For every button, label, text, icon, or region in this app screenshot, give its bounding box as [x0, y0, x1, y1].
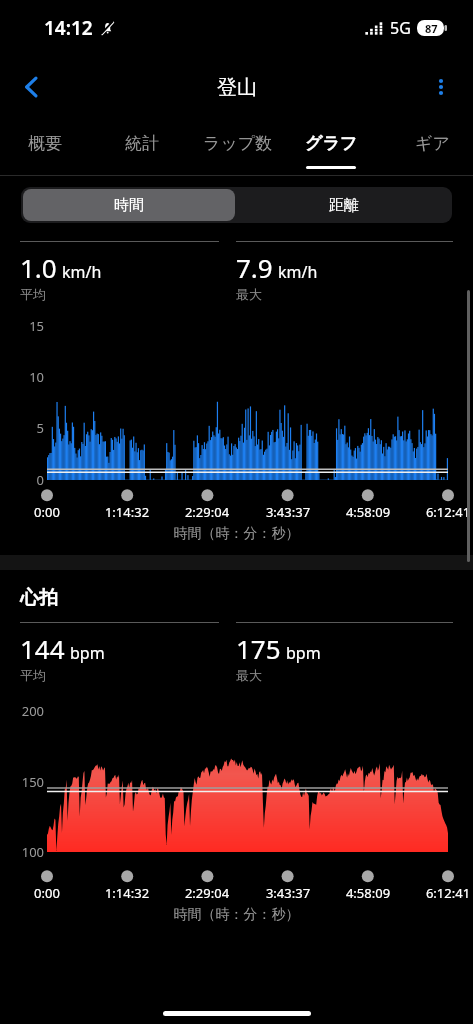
staticText: 統計 — [125, 133, 159, 154]
staticText: 2:29:04 — [177, 503, 237, 521]
button[interactable]: Back — [8, 63, 56, 111]
staticText: 15 — [20, 317, 44, 335]
staticText: 時間（時：分：秒） — [0, 525, 473, 543]
staticText: 平均 — [20, 286, 46, 302]
button[interactable]: 距離 — [236, 187, 452, 223]
staticText: 100 — [12, 843, 44, 861]
staticText: 4:58:09 — [338, 503, 398, 521]
staticText: 150 — [12, 773, 44, 791]
staticText: 2:29:04 — [177, 884, 237, 902]
button[interactable]: 概要 — [18, 118, 72, 168]
staticText: 時間 — [114, 196, 144, 215]
staticText: 概要 — [28, 133, 62, 154]
staticText: 距離 — [329, 196, 359, 215]
staticText: ラップ数 — [203, 133, 273, 154]
staticText: グラフ — [305, 133, 358, 154]
staticText: 平均 — [20, 667, 46, 683]
staticText: km/h — [62, 261, 102, 283]
staticText: 5G — [390, 17, 411, 39]
staticText: bpm — [70, 642, 105, 664]
staticText: 144 — [20, 631, 65, 666]
staticText: 心拍 — [20, 586, 58, 610]
staticText: 200 — [12, 702, 44, 720]
button[interactable]: グラフ — [295, 118, 367, 168]
staticText: 5 — [20, 419, 44, 437]
staticText: 0:00 — [17, 884, 77, 902]
staticText: 0 — [20, 471, 44, 489]
staticText: 時間（時：分：秒） — [0, 906, 473, 924]
staticText: 87 — [425, 21, 438, 36]
staticText: 最大 — [236, 667, 262, 683]
button[interactable]: ラップ数 — [193, 118, 283, 168]
staticText: 6:12:41 — [418, 503, 473, 521]
staticText: 3:43:37 — [258, 884, 318, 902]
staticText: 7.9 — [236, 250, 273, 285]
staticText: 10 — [20, 368, 44, 386]
staticText: 0:00 — [17, 503, 77, 521]
staticText: 3:43:37 — [258, 503, 318, 521]
staticText: 1.0 — [20, 250, 57, 285]
staticText: 6:12:41 — [418, 884, 473, 902]
button[interactable]: 時間 — [23, 189, 235, 221]
staticText: 1:14:32 — [97, 503, 157, 521]
staticText: 登山 — [217, 75, 257, 100]
button[interactable]: More options — [417, 63, 465, 111]
staticText: 175 — [236, 631, 281, 666]
staticText: km/h — [278, 261, 318, 283]
button[interactable]: 統計 — [115, 118, 169, 168]
staticText: bpm — [286, 642, 321, 664]
staticText: 14:12 — [44, 15, 93, 41]
staticText: 4:58:09 — [338, 884, 398, 902]
staticText: 1:14:32 — [97, 884, 157, 902]
staticText: 最大 — [236, 286, 262, 302]
staticText: ギア — [415, 133, 450, 154]
button[interactable]: ギア — [405, 118, 459, 168]
